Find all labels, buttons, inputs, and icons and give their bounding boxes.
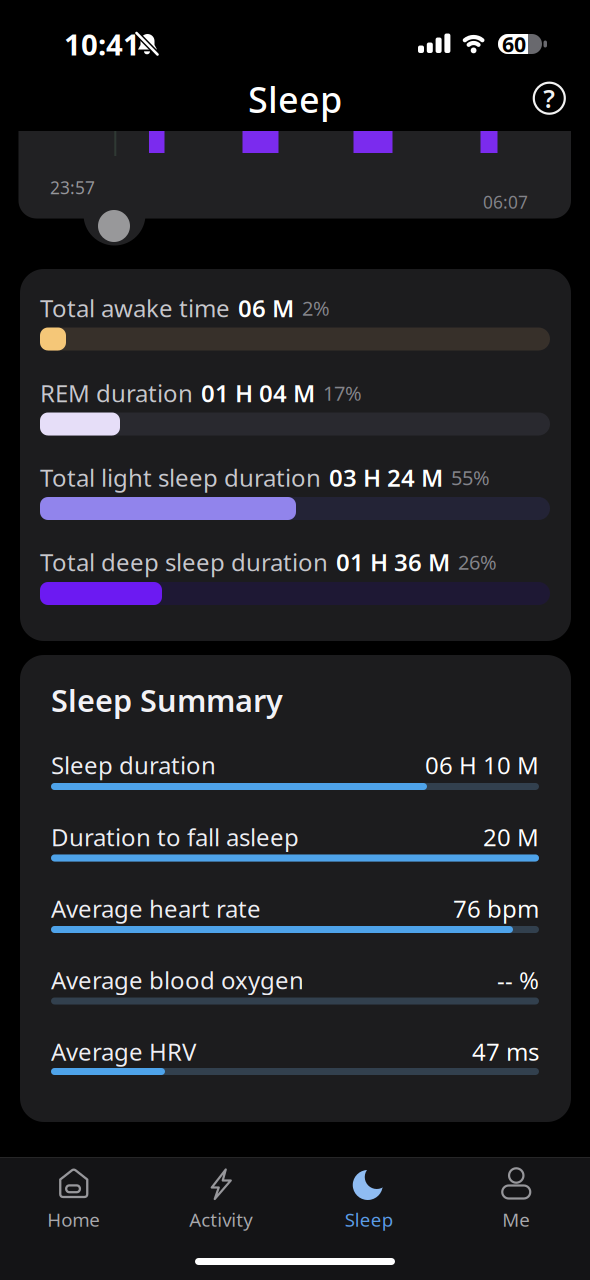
staticText: 03 H 24 M	[329, 462, 443, 493]
button[interactable]: Help	[532, 81, 566, 115]
staticText: 60	[502, 30, 526, 58]
staticText: Home	[47, 1207, 100, 1232]
staticText: Total awake time	[40, 292, 230, 324]
staticText: -- %	[497, 964, 539, 996]
staticText: Duration to fall asleep	[51, 821, 299, 853]
staticText: 10:41	[64, 24, 140, 63]
staticText: 55%	[451, 464, 490, 491]
staticText: ?	[543, 81, 555, 115]
staticText: 01 H 04 M	[201, 377, 315, 409]
staticText: Total light sleep duration	[40, 462, 321, 493]
staticText: Sleep	[345, 1207, 393, 1232]
staticText: Sleep duration	[51, 749, 216, 781]
staticText: 76 bpm	[453, 893, 539, 924]
staticText: 01 H 36 M	[336, 546, 450, 578]
button[interactable]: Me	[442, 1166, 590, 1258]
staticText: 20 M	[483, 821, 539, 853]
button[interactable]: Adjust sleep time range	[98, 210, 130, 242]
staticText: Sleep Summary	[51, 680, 283, 720]
staticText: Sleep	[248, 75, 342, 123]
staticText: REM duration	[40, 377, 193, 409]
staticText: Me	[502, 1207, 530, 1232]
button[interactable]: Home	[0, 1166, 147, 1258]
staticText: 06:07	[483, 190, 528, 213]
staticText: Total deep sleep duration	[40, 546, 328, 578]
staticText: 47 ms	[472, 1036, 539, 1067]
staticText: Activity	[189, 1207, 253, 1232]
staticText: 26%	[458, 549, 497, 575]
button[interactable]: Sleep	[295, 1166, 442, 1258]
staticText: Average HRV	[51, 1036, 196, 1067]
staticText: 17%	[323, 380, 362, 406]
staticText: Average blood oxygen	[51, 964, 304, 996]
staticText: 23:57	[50, 176, 95, 199]
staticText: Average heart rate	[51, 893, 261, 924]
button[interactable]: Activity	[147, 1166, 295, 1258]
staticText: 2%	[302, 295, 330, 321]
staticText: 06 H 10 M	[425, 749, 539, 781]
staticText: 06 M	[238, 292, 294, 324]
